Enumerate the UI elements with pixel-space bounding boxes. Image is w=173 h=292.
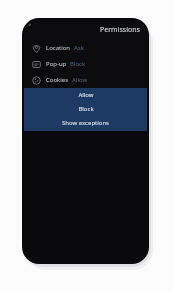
button[interactable]: Cookies Allow [24, 72, 147, 88]
staticText: Show exceptions [62, 119, 109, 127]
staticText: Pop-up [46, 60, 67, 68]
button[interactable]: Location Ask [24, 40, 147, 56]
staticText: Allow [72, 76, 88, 84]
button[interactable]: Block [24, 102, 147, 116]
button[interactable]: Show exceptions [24, 116, 147, 130]
button[interactable]: Allow [24, 88, 147, 102]
staticText: Block [78, 105, 94, 113]
staticText: Permissions [100, 25, 140, 35]
staticText: Allow [78, 91, 94, 99]
staticText: Cookies [46, 76, 69, 84]
button[interactable]: Pop-up Block [24, 56, 147, 72]
staticText: Ask [74, 44, 84, 52]
staticText: Location [46, 44, 71, 52]
staticText: Block [70, 60, 86, 68]
